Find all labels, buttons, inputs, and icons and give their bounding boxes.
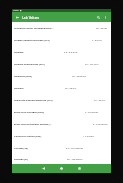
staticText: 44 - 147 IU/L [85, 63, 99, 66]
button[interactable]: Search [95, 14, 102, 21]
staticText: 23 - 85 U/L [65, 87, 77, 90]
button[interactable]: Brain Type Natriuretic Peptide (BNP) [12, 118, 111, 130]
staticText: Alkaline Phosphatase (ALP) [14, 63, 45, 66]
staticText: Lab Values [22, 15, 40, 20]
button[interactable]: Home [57, 164, 66, 173]
button[interactable]: Calcium (Ca) [12, 142, 111, 154]
button[interactable]: Recent apps [75, 164, 84, 173]
staticText: 96 - 106 mEq/L [67, 158, 83, 161]
button[interactable]: Albumin [12, 46, 111, 58]
staticText: 10:42 [13, 9, 19, 12]
staticText: Aspartate Aminotransferase (AST) [14, 99, 53, 102]
staticText: Ammonia (NH3) [14, 75, 32, 78]
staticText: 15 - 45 ug/dL [72, 75, 87, 78]
staticText: 8.4 - 10.2 mg/dL [66, 147, 84, 150]
staticText: C-Reactive Protein (CRP) [14, 135, 42, 138]
staticText: 10 - 40 U/L [94, 99, 106, 102]
button[interactable]: Alkaline Phosphatase (ALP) [12, 58, 111, 70]
staticText: Brain Type Natriuretic Peptide (BNP) [14, 123, 53, 126]
staticText: 7 - 20 mg/dL [85, 111, 99, 114]
staticText: 7 - 56 U/L [92, 39, 103, 42]
staticText: 3.5 - 5.5 g/dL [64, 51, 78, 54]
staticText: Calcium (Ca) [14, 147, 28, 150]
staticText: < 1.0 mg/L [83, 135, 95, 138]
staticText: Alanine Aminotransferase (ALT) [14, 39, 50, 42]
button[interactable]: Aspartate Aminotransferase (AST) [12, 94, 111, 106]
staticText: Blood Urea Nitrogen (BUN) [14, 111, 45, 114]
button[interactable]: Activated Partial Thromboplastin Time (A… [12, 22, 111, 34]
button[interactable]: Amylase [12, 82, 111, 94]
button[interactable]: Blood Urea Nitrogen (BUN) [12, 106, 111, 118]
staticText: Amylase [14, 87, 24, 90]
button[interactable]: Ammonia (NH3) [12, 70, 111, 82]
staticText: 0 - 100 pg/mL [93, 123, 108, 126]
staticText: 25 - 35 sec [96, 27, 108, 30]
staticText: Albumin [14, 51, 24, 54]
button[interactable]: Navigate up [14, 14, 21, 21]
staticText: Activated Partial Thromboplastin Time (A… [14, 27, 55, 30]
button[interactable]: More options [102, 14, 109, 21]
button[interactable]: Chloride (Cl) [12, 154, 111, 164]
staticText: Chloride (Cl) [14, 158, 28, 161]
button[interactable]: Back [39, 164, 48, 173]
button[interactable]: Alanine Aminotransferase (ALT) [12, 34, 111, 46]
button[interactable]: C-Reactive Protein (CRP) [12, 130, 111, 142]
